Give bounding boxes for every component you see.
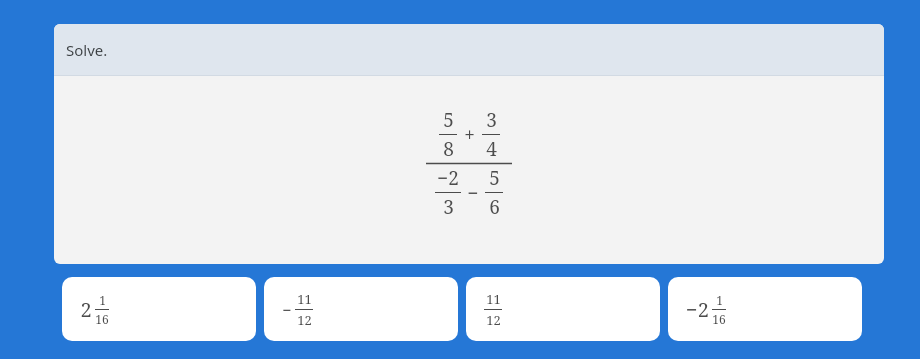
staticText: 6 [489,194,500,220]
staticText: −2 [437,165,459,191]
staticText: 2 [80,296,92,323]
staticText: 3 [486,107,497,133]
staticText: 12 [297,311,312,329]
staticText: 11 [486,290,501,308]
staticText: − [282,299,292,321]
staticText: 4 [486,136,497,162]
staticText: 8 [443,136,454,162]
button[interactable]: 2 [62,277,256,341]
staticText: 12 [486,311,501,329]
button[interactable]: −2 [668,277,862,341]
staticText: 16 [95,311,109,327]
staticText: 1 [716,292,723,308]
staticText: − [467,180,479,206]
button[interactable]: − [264,277,458,341]
staticText: 16 [712,311,726,327]
staticText: Solve. [66,40,108,60]
staticText: 5 [443,107,454,133]
staticText: −2 [686,296,709,323]
staticText: 1 [99,292,106,308]
staticText: + [464,122,475,148]
staticText: 3 [443,194,454,220]
button[interactable]: 11 [466,277,660,341]
staticText: 5 [489,165,500,191]
staticText: 11 [297,290,312,308]
